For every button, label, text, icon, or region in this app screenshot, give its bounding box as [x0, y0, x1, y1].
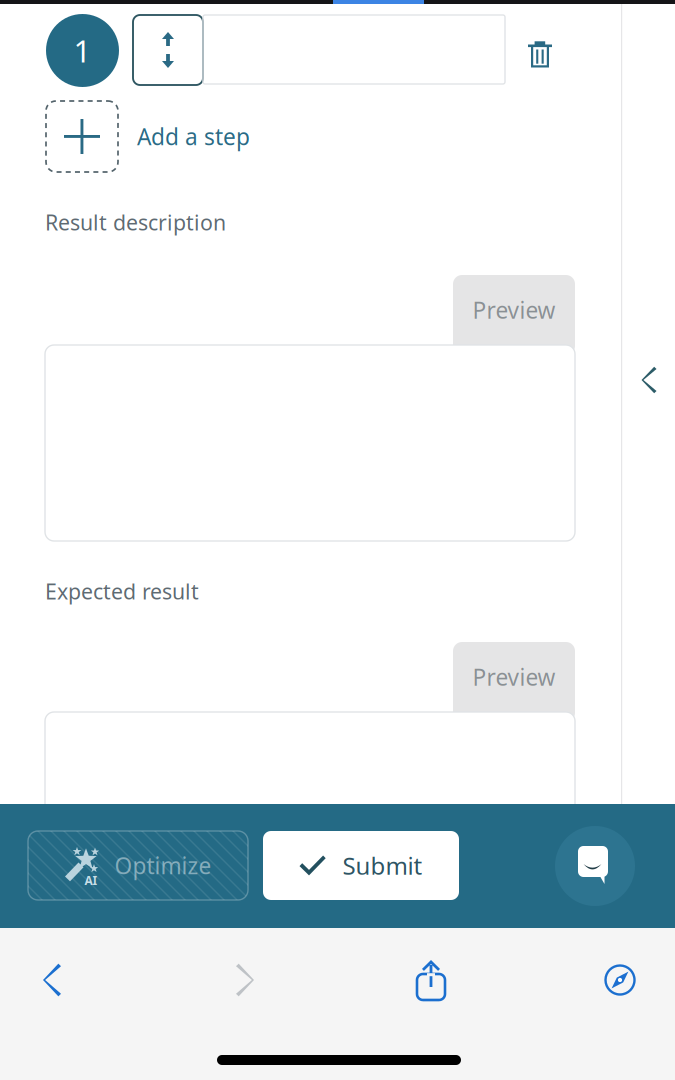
button[interactable]: AI [28, 831, 248, 900]
staticText: Expected result [45, 577, 199, 605]
staticText: 1 [73, 30, 91, 71]
button[interactable]: Preview [453, 642, 575, 722]
button[interactable]: Back [11, 950, 93, 1010]
staticText: Preview [472, 295, 555, 325]
staticText: Optimize [114, 850, 211, 880]
button[interactable]: Forward [204, 950, 286, 1010]
button[interactable]: Collapse sidebar [623, 348, 675, 412]
button[interactable]: Delete step [511, 23, 569, 85]
staticText: Preview [472, 662, 555, 692]
staticText: Submit [342, 850, 422, 881]
button[interactable]: Reorder step [133, 15, 203, 85]
button[interactable]: Preview [453, 275, 575, 355]
staticText: Result description [45, 208, 226, 236]
staticText: Add a step [137, 121, 250, 151]
button[interactable]: Share [390, 950, 472, 1010]
button[interactable]: Tabs [579, 950, 661, 1010]
staticText: AI [84, 872, 97, 888]
button[interactable]: Submit [263, 831, 459, 900]
button[interactable]: Open support chat [555, 826, 635, 906]
button[interactable]: Add a step [46, 101, 366, 172]
